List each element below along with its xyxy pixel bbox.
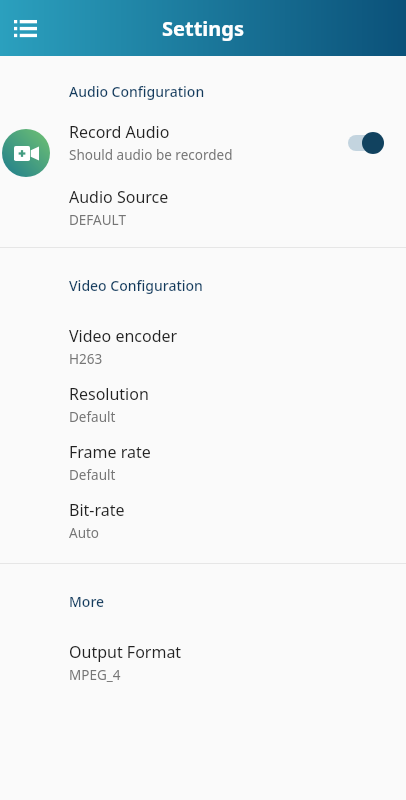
button[interactable]: Menu: [1, 4, 49, 52]
staticText: DEFAULT: [69, 211, 126, 229]
button[interactable]: Record video: [2, 129, 50, 177]
button[interactable]: Bit-rate: [0, 491, 406, 563]
staticText: Default: [69, 466, 116, 484]
button[interactable]: Video encoder: [0, 295, 406, 375]
button[interactable]: Record audio toggle, on: [344, 128, 392, 158]
staticText: Audio Configuration: [69, 82, 205, 101]
staticText: Video Configuration: [69, 276, 203, 295]
staticText: Output Format: [69, 641, 182, 663]
button[interactable]: Resolution: [0, 375, 406, 433]
staticText: More: [69, 592, 105, 611]
staticText: Video encoder: [69, 325, 178, 347]
staticText: Should audio be recorded: [69, 146, 233, 164]
staticText: Settings: [162, 15, 244, 42]
staticText: Audio Source: [69, 186, 169, 208]
staticText: MPEG_4: [69, 666, 121, 684]
staticText: Bit-rate: [69, 499, 125, 521]
button[interactable]: Record Audio: [0, 101, 406, 177]
staticText: Default: [69, 408, 116, 426]
staticText: Frame rate: [69, 441, 151, 463]
staticText: H263: [69, 350, 103, 368]
button[interactable]: Output Format: [0, 611, 406, 691]
staticText: Auto: [69, 524, 100, 542]
button[interactable]: Audio Source: [0, 177, 406, 247]
staticText: Resolution: [69, 383, 149, 405]
staticText: Record Audio: [69, 121, 170, 143]
button[interactable]: Frame rate: [0, 433, 406, 491]
